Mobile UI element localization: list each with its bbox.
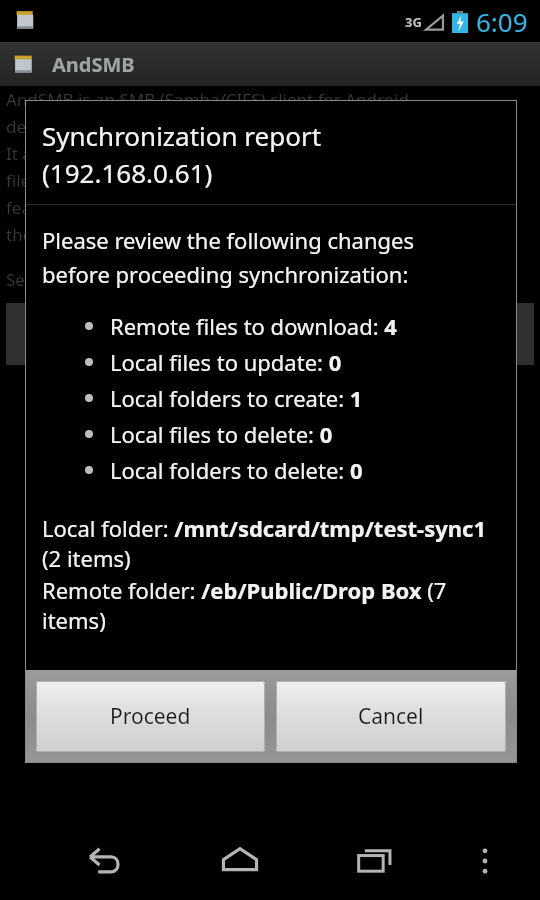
- staticText: 3G: [405, 13, 422, 31]
- staticText: Remote folder: /eb/Public/Drop Box (7 it…: [42, 575, 503, 635]
- staticText: Proceed: [110, 702, 191, 731]
- button[interactable]: Cancel: [276, 681, 506, 752]
- staticText: Cancel: [358, 702, 424, 731]
- staticText: Servers: [6, 268, 66, 291]
- button[interactable]: More options: [458, 834, 512, 888]
- staticText: Synchronization report: [42, 118, 322, 153]
- staticText: AndSMB is an SMB (Samba/CIFS) client for…: [6, 88, 409, 111]
- staticText: Please review the following changes: [42, 225, 414, 255]
- staticText: Local files to delete: 0: [110, 419, 333, 449]
- staticText: 6:09: [476, 4, 528, 39]
- staticText: Local folders to create: 1: [110, 383, 363, 413]
- staticText: before proceeding synchronization:: [42, 259, 409, 289]
- staticText: Remote files to download: 4: [110, 311, 397, 341]
- button[interactable]: Proceed: [36, 681, 265, 752]
- button[interactable]: Back: [73, 829, 137, 893]
- staticText: devices.: [6, 115, 70, 138]
- staticText: Local folders to delete: 0: [110, 455, 363, 485]
- button[interactable]: Home: [208, 829, 272, 893]
- button[interactable]: Recent apps: [343, 829, 407, 893]
- staticText: files, create folders and more. The sync: [6, 169, 318, 192]
- staticText: Local folder: /mnt/sdcard/tmp/test-sync1…: [42, 513, 503, 573]
- staticText: (192.168.0.61): [42, 155, 213, 190]
- staticText: feature lets you keep a local folder in …: [6, 196, 379, 219]
- staticText: AndSMB: [52, 51, 135, 78]
- staticText: It allows to browse shares, download and…: [6, 142, 396, 165]
- staticText: Local files to update: 0: [110, 347, 342, 377]
- staticText: the remote share.: [6, 223, 149, 246]
